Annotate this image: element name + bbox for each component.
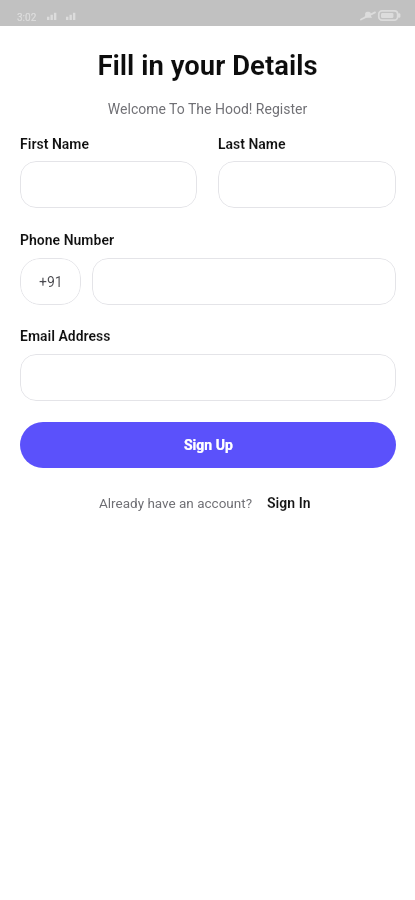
button[interactable]	[20, 161, 197, 208]
button[interactable]: Sign Up	[20, 422, 396, 468]
button[interactable]: +91	[20, 258, 81, 305]
staticText: 3:02	[17, 12, 37, 24]
staticText: +91	[39, 274, 63, 290]
other: Battery	[378, 10, 401, 21]
button[interactable]	[20, 354, 396, 401]
staticText: Phone Number	[20, 232, 115, 248]
staticText: Email Address	[20, 328, 111, 344]
staticText: Sign Up	[184, 437, 233, 453]
other: Silent mode	[360, 9, 376, 21]
staticText: Last Name	[218, 136, 286, 152]
staticText: Sign In	[267, 495, 311, 511]
button[interactable]	[218, 161, 396, 208]
staticText: First Name	[20, 136, 89, 152]
staticText: Fill in your Details	[0, 49, 415, 81]
button[interactable]: Sign In	[267, 495, 311, 511]
staticText: Welcome To The Hood! Register	[0, 101, 415, 117]
button[interactable]	[92, 258, 396, 305]
staticText: Already have an account?	[99, 495, 253, 511]
